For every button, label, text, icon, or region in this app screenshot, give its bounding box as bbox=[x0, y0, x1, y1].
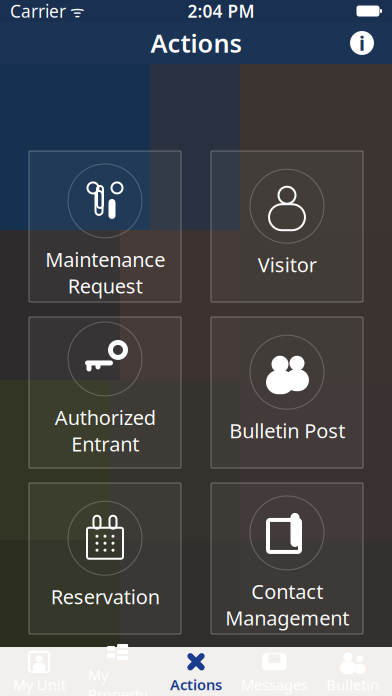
staticText: Authorized Entrant bbox=[54, 404, 155, 457]
staticText: Actions bbox=[170, 675, 222, 694]
staticText: Maintenance Request bbox=[45, 246, 165, 299]
staticText: Bulletin bbox=[326, 675, 379, 694]
staticText: Bulletin Post bbox=[229, 417, 345, 444]
button[interactable]: Authorized Entrant bbox=[29, 317, 181, 468]
staticText: Reservation bbox=[50, 583, 159, 610]
staticText: My Unit bbox=[13, 675, 66, 694]
staticText: 2:04 PM bbox=[187, 0, 254, 22]
button[interactable]: My Property bbox=[78, 647, 157, 696]
button[interactable]: Bulletin bbox=[314, 647, 392, 696]
staticText: i bbox=[359, 30, 365, 56]
button[interactable]: Maintenance Request bbox=[29, 151, 181, 302]
button[interactable]: Actions bbox=[157, 647, 235, 696]
button[interactable]: My Unit bbox=[0, 647, 78, 696]
staticText: Contact Management bbox=[225, 578, 349, 631]
staticText: Carrier bbox=[10, 0, 66, 22]
button[interactable]: Visitor bbox=[211, 151, 363, 302]
button[interactable]: Messages bbox=[235, 647, 314, 696]
button[interactable]: Information bbox=[340, 22, 384, 64]
button[interactable]: Reservation bbox=[29, 483, 181, 634]
button[interactable]: Bulletin Post bbox=[211, 317, 363, 468]
staticText: ᯤ bbox=[66, 0, 85, 22]
staticText: Visitor bbox=[257, 251, 316, 278]
button[interactable]: Contact Management bbox=[211, 483, 363, 634]
staticText: Messages bbox=[241, 675, 308, 694]
staticText: My Property bbox=[88, 665, 147, 696]
staticText: Actions bbox=[150, 26, 241, 60]
